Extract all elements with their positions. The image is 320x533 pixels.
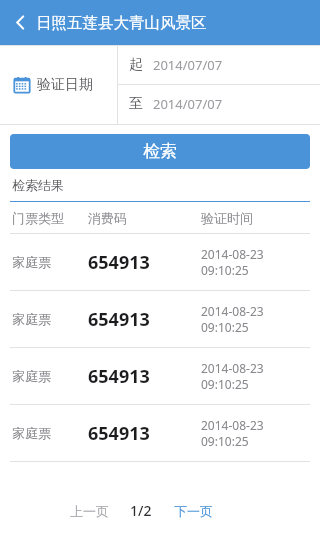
staticText: 门票类型	[12, 210, 64, 226]
staticText: 检索	[143, 141, 177, 162]
staticText: 2014-08-23	[201, 417, 264, 433]
staticText: 家庭票	[12, 311, 51, 327]
staticText: 家庭票	[12, 368, 51, 384]
button[interactable]: 检索	[10, 134, 310, 169]
button[interactable]: 至	[118, 85, 320, 123]
staticText: 2014-08-23	[201, 303, 264, 319]
button[interactable]: 上一页	[62, 488, 116, 533]
staticText: 上一页	[70, 503, 109, 519]
staticText: 检索结果	[12, 177, 64, 193]
staticText: 09:10:25	[201, 433, 249, 449]
button[interactable]: 下一页	[166, 488, 220, 533]
button[interactable]: Back	[0, 0, 40, 45]
button[interactable]: 家庭票	[0, 234, 320, 290]
staticText: 654913	[88, 364, 150, 389]
button[interactable]: 验证日期	[0, 46, 117, 124]
button[interactable]: 家庭票	[0, 348, 320, 404]
staticText: 2014-08-23	[201, 246, 264, 262]
button[interactable]: 家庭票	[0, 291, 320, 347]
staticText: 2014/07/07	[153, 95, 223, 113]
staticText: 起	[129, 56, 143, 74]
staticText: 09:10:25	[201, 319, 249, 335]
staticText: 家庭票	[12, 425, 51, 441]
staticText: 654913	[88, 250, 150, 275]
button[interactable]: 家庭票	[0, 405, 320, 461]
staticText: 家庭票	[12, 254, 51, 270]
staticText: 654913	[88, 421, 150, 446]
staticText: 2014-08-23	[201, 360, 264, 376]
staticText: 至	[129, 95, 143, 113]
staticText: 日照五莲县大青山风景区	[36, 13, 207, 33]
staticText: 09:10:25	[201, 376, 249, 392]
staticText: 654913	[88, 307, 150, 332]
staticText: 2014/07/07	[153, 56, 223, 74]
staticText: 1/2	[130, 501, 152, 520]
staticText: 消费码	[88, 210, 127, 226]
staticText: 验证日期	[37, 76, 93, 94]
staticText: 下一页	[174, 503, 213, 519]
button[interactable]: 起	[118, 46, 320, 84]
staticText: 验证时间	[201, 210, 253, 226]
staticText: 09:10:25	[201, 262, 249, 278]
